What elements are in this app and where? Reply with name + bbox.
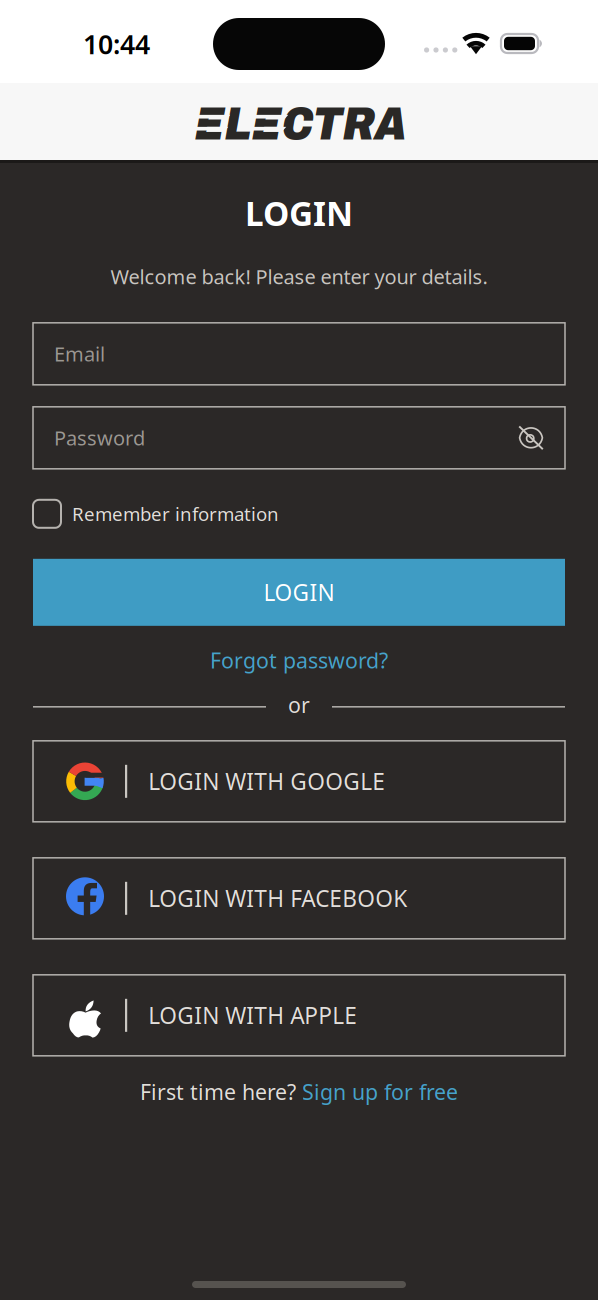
staticText: Welcome back! Please enter your details. xyxy=(110,263,487,290)
button[interactable]: LOGIN WITH FACEBOOK xyxy=(33,858,565,939)
staticText: 10:44 xyxy=(83,26,150,62)
button[interactable]: Forgot password? xyxy=(210,626,388,695)
staticText: First time here? xyxy=(140,1078,302,1106)
button[interactable]: LOGIN xyxy=(33,559,565,626)
button[interactable]: LOGIN WITH GOOGLE xyxy=(33,741,565,822)
staticText: LOGIN xyxy=(245,191,353,235)
staticText: LOGIN xyxy=(263,577,334,607)
staticText: Remember information xyxy=(72,501,279,526)
staticText: Email xyxy=(54,340,105,367)
staticText: ELECTRA xyxy=(194,98,406,149)
staticText: LOGIN WITH APPLE xyxy=(148,1000,357,1030)
button[interactable]: LOGIN WITH APPLE xyxy=(33,975,565,1056)
staticText: or xyxy=(288,691,310,719)
button[interactable]: First time here? xyxy=(140,1064,458,1120)
staticText: Forgot password? xyxy=(210,646,388,674)
staticText: LOGIN WITH FACEBOOK xyxy=(148,883,407,913)
staticText: LOGIN WITH GOOGLE xyxy=(148,766,385,796)
staticText: Password xyxy=(54,424,145,451)
button[interactable]: Email xyxy=(33,323,565,385)
button[interactable]: Remember information xyxy=(33,491,565,537)
staticText: Sign up for free xyxy=(302,1078,458,1106)
button[interactable]: Password xyxy=(33,407,565,469)
